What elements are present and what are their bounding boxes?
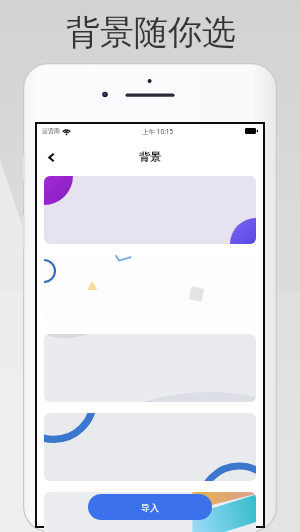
- button[interactable]: 导入: [88, 494, 212, 520]
- staticText: 导入: [141, 502, 159, 513]
- staticText: 背景: [139, 150, 161, 164]
- button[interactable]: [44, 413, 256, 481]
- staticText: 背景随你选: [66, 11, 236, 54]
- button[interactable]: Back: [41, 147, 61, 167]
- button[interactable]: [44, 176, 256, 244]
- staticText: 运营商: [42, 127, 60, 135]
- button[interactable]: [44, 492, 256, 532]
- staticText: 上午 10:15: [142, 127, 174, 136]
- button[interactable]: [44, 255, 256, 323]
- button[interactable]: [44, 334, 256, 402]
